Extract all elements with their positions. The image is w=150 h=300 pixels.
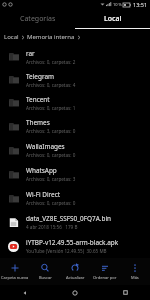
staticText: Carpeta nueva	[1, 275, 29, 280]
staticText: 10 %	[113, 2, 122, 7]
button[interactable]: Home	[50, 285, 100, 300]
button[interactable]: Actualizar	[60, 258, 90, 285]
staticText: Archivos: 0, carpetas: 0	[26, 200, 76, 206]
staticText: Archivos: 3, carpetas: 0	[26, 128, 76, 134]
button[interactable]: Themes	[0, 114, 150, 138]
button[interactable]: WhatsApp	[0, 162, 150, 186]
button[interactable]: Wi-Fi Direct	[0, 186, 150, 210]
staticText: WhatsApp	[26, 166, 57, 175]
button[interactable]: rar	[0, 45, 150, 68]
staticText: 13:51	[133, 1, 148, 8]
button[interactable]: Recents	[100, 285, 150, 300]
button[interactable]: Categorías	[0, 9, 75, 29]
staticText: Local	[4, 33, 19, 41]
button[interactable]: Tencent	[0, 91, 150, 114]
staticText: Themes	[26, 118, 50, 127]
staticText: Buscar	[39, 275, 52, 280]
button[interactable]: WallaImages	[0, 138, 150, 162]
button[interactable]: iYTBP-v12.49.55-arm-black.apk	[0, 234, 150, 258]
staticText: Wi-Fi Direct	[26, 190, 61, 199]
staticText: Local	[104, 14, 122, 24]
button[interactable]: Ordenar por	[90, 258, 120, 285]
staticText: WallaImages	[26, 142, 65, 151]
staticText: Actualizar	[66, 275, 85, 280]
staticText: YouTube (Versión 12.49.55) 30.65 MB	[26, 248, 107, 254]
staticText: Telegram	[26, 72, 54, 81]
staticText: Ordenar por	[93, 275, 117, 280]
button[interactable]: Back	[0, 285, 50, 300]
staticText: data_VZ8E_SSFS0_0FQ7A.bin	[26, 214, 112, 223]
staticText: Más	[131, 275, 139, 280]
staticText: Categorías	[20, 14, 56, 24]
staticText: 4 abr 2018 15:56 179 B	[26, 224, 78, 230]
button[interactable]: data_VZ8E_SSFS0_0FQ7A.bin	[0, 210, 150, 234]
staticText: Archivos: 0, carpetas: 0	[26, 152, 76, 158]
staticText: rar	[26, 49, 35, 58]
staticText: Memoria interna	[27, 33, 75, 41]
staticText: Archivos: 0, carpetas: 2	[26, 59, 76, 65]
staticText: Tencent	[26, 95, 50, 104]
button[interactable]: Buscar	[30, 258, 60, 285]
button[interactable]: Carpeta nueva	[0, 258, 30, 285]
staticText: Archivos: 0, carpetas: 4	[26, 82, 76, 88]
button[interactable]: Telegram	[0, 68, 150, 91]
staticText: iYTBP-v12.49.55-arm-black.apk	[26, 238, 119, 247]
button[interactable]: Local	[75, 9, 150, 29]
staticText: Archivos: 0, carpetas: 1	[26, 105, 76, 111]
staticText: Archivos: 0, carpetas: 3	[26, 176, 76, 182]
button[interactable]: Más	[120, 258, 150, 285]
